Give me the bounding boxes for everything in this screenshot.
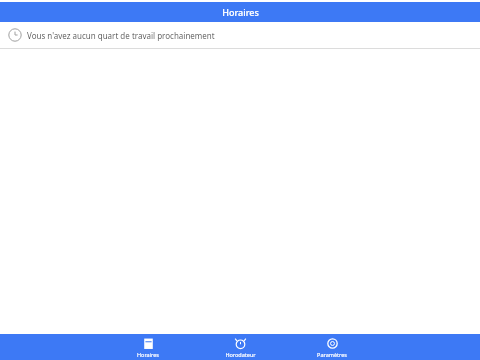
button[interactable]: Horodateur — [217, 334, 263, 360]
button[interactable]: Vous n'avez aucun quart de travail proch… — [0, 22, 480, 48]
staticText: Paramètres — [317, 351, 347, 358]
staticText: Vous n'avez aucun quart de travail proch… — [27, 30, 215, 41]
button[interactable]: Horaires — [125, 334, 171, 360]
staticText: Horaires — [222, 6, 259, 18]
staticText: Horaires — [137, 351, 159, 358]
button[interactable]: Paramètres — [309, 334, 355, 360]
staticText: Horodateur — [225, 351, 256, 358]
